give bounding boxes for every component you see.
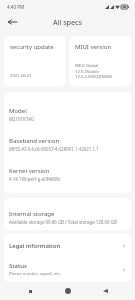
button[interactable]: Model: [4, 99, 131, 129]
staticText: MIUI Global 12.5.2Stable 12.5.2.0(RKQINX…: [75, 63, 113, 79]
staticText: All specs: [53, 17, 82, 27]
button[interactable]: Legal information: [4, 234, 131, 257]
staticText: Status: [9, 262, 28, 270]
button[interactable]: Back: [4, 14, 20, 30]
staticText: M2101K7AG: [9, 116, 35, 122]
staticText: Internal storage: [9, 210, 55, 218]
staticText: Model: [9, 107, 27, 115]
button[interactable]: Home: [60, 283, 76, 299]
staticText: Baseband version: [9, 137, 60, 145]
button[interactable]: Kernel version: [4, 159, 131, 189]
staticText: Kernel version: [9, 167, 50, 175]
button[interactable]: Status: [4, 257, 131, 282]
staticText: MIUI version: [75, 43, 112, 51]
button[interactable]: Internal storage: [4, 205, 131, 230]
button[interactable]: Baseband version: [4, 129, 131, 159]
staticText: Legal information: [9, 242, 61, 250]
staticText: 2021-06-01: [10, 73, 32, 79]
staticText: MPSS.AT.4.4.c6-00037-4.42R991.1.42621.1.…: [9, 146, 99, 152]
staticText: Available storage 99.66 GB / Total stora…: [9, 219, 117, 225]
staticText: security update: [10, 43, 54, 51]
staticText: Phone number, signal, etc.: [9, 271, 61, 277]
button[interactable]: security update: [4, 36, 66, 86]
button[interactable]: Back: [97, 283, 113, 299]
staticText: 4.14.190-perf-g-a0f4d09c: [9, 176, 61, 182]
button[interactable]: MIUI version: [69, 36, 131, 86]
staticText: 4:40 PM: [7, 4, 25, 10]
button[interactable]: Recent apps: [22, 283, 38, 299]
